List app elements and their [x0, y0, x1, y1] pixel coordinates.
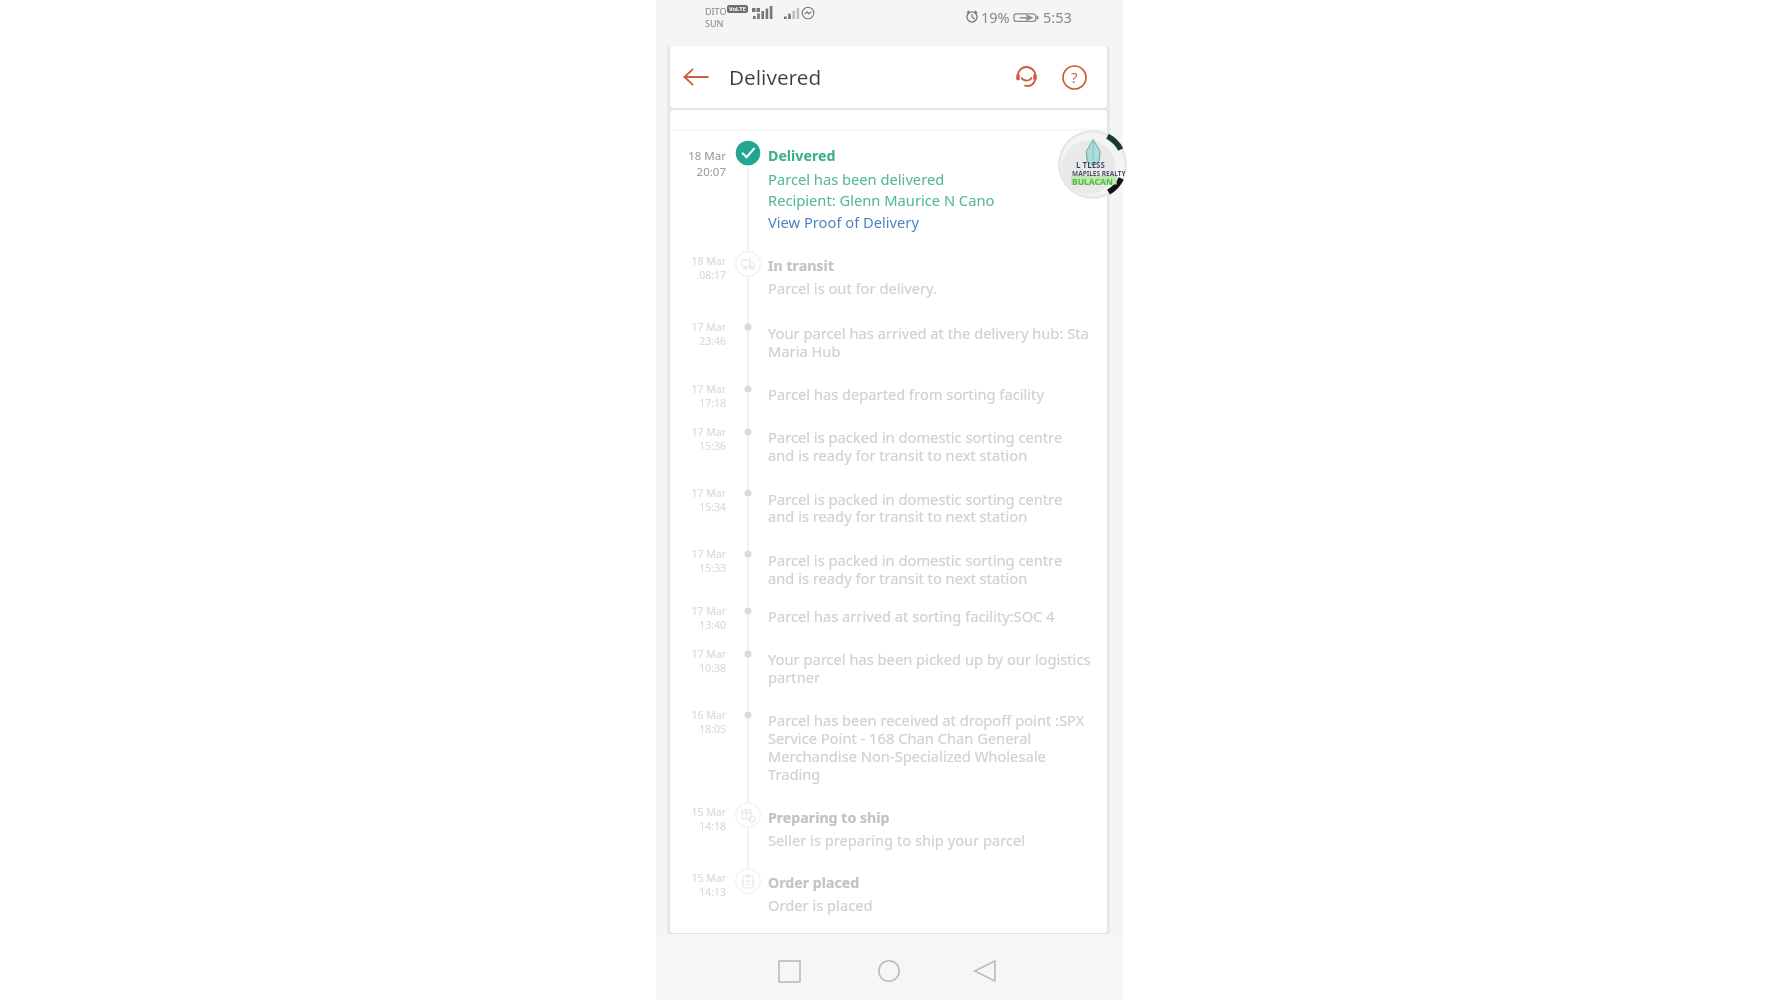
staticText: and is ready for transit to next station — [768, 568, 1028, 588]
staticText: ? — [1071, 67, 1078, 87]
staticText: Service Point - 168 Chan Chan General — [768, 728, 1032, 748]
staticText: Your parcel has been picked up by our lo… — [768, 649, 1091, 669]
staticText: 18 Mar — [691, 254, 726, 268]
staticText: Seller is preparing to ship your parcel — [768, 830, 1026, 850]
staticText: 17 Mar — [691, 547, 726, 561]
staticText: 14:13 — [699, 885, 726, 899]
staticText: Maria Hub — [768, 341, 841, 361]
button[interactable]: Back — [959, 945, 1011, 997]
staticText: Preparing to ship — [768, 808, 890, 827]
button[interactable]: Customer service — [1003, 54, 1049, 100]
staticText: Your parcel has arrived at the delivery … — [768, 323, 1089, 343]
staticText: Parcel is packed in domestic sorting cen… — [768, 550, 1063, 570]
staticText: 14:18 — [699, 819, 726, 833]
staticText: Order is placed — [768, 895, 873, 915]
staticText: 18 Mar — [688, 148, 726, 164]
staticText: 23:46 — [699, 334, 726, 348]
staticText: 17 Mar — [691, 486, 726, 500]
button[interactable]: Recents — [763, 945, 815, 997]
button[interactable]: Home — [863, 945, 915, 997]
staticText: Delivered — [729, 63, 822, 91]
staticText: partner — [768, 667, 821, 687]
staticText: Trading — [768, 764, 821, 784]
staticText: Parcel is packed in domestic sorting cen… — [768, 427, 1063, 447]
staticText: 17 Mar — [691, 320, 726, 334]
staticText: In transit — [768, 256, 834, 275]
staticText: 5:53 — [1043, 7, 1072, 27]
staticText: and is ready for transit to next station — [768, 506, 1028, 526]
staticText: 15:36 — [699, 439, 726, 453]
staticText: 15:34 — [699, 500, 726, 514]
staticText: Parcel is packed in domestic sorting cen… — [768, 489, 1063, 509]
staticText: Merchandise Non-Specialized Wholesale — [768, 746, 1046, 766]
staticText: Parcel has been received at dropoff poin… — [768, 710, 1085, 730]
button[interactable]: Back — [670, 51, 722, 103]
button[interactable]: View Proof of Delivery — [768, 212, 919, 232]
staticText: VoLTE — [729, 5, 746, 13]
staticText: Order placed — [768, 873, 860, 892]
staticText: Parcel has arrived at sorting facility:S… — [768, 606, 1055, 626]
staticText: 17 Mar — [691, 425, 726, 439]
staticText: Parcel has been delivered — [768, 169, 945, 189]
staticText: 13:40 — [699, 618, 726, 632]
staticText: 17 Mar — [691, 604, 726, 618]
staticText: 08:17 — [699, 268, 726, 282]
staticText: 17 Mar — [691, 647, 726, 661]
staticText: 10:38 — [699, 661, 726, 675]
staticText: 19% — [981, 7, 1010, 27]
staticText: 20:07 — [696, 164, 726, 180]
staticText: 17 Mar — [691, 382, 726, 396]
staticText: 16 Mar — [691, 708, 726, 722]
staticText: Recipient: Glenn Maurice N Cano — [768, 190, 995, 210]
staticText: 17:18 — [699, 396, 726, 410]
staticText: Parcel has departed from sorting facilit… — [768, 384, 1044, 404]
staticText: Delivered — [768, 146, 836, 165]
staticText: L TLESS — [1076, 159, 1105, 170]
staticText: 15 Mar — [691, 805, 726, 819]
staticText: SUN — [705, 17, 724, 29]
staticText: DITO — [705, 5, 727, 17]
staticText: BULACAN — [1072, 176, 1113, 188]
staticText: 15:33 — [699, 561, 726, 575]
button[interactable]: Help — [1051, 54, 1097, 100]
staticText: MAPILES REALTY — [1072, 169, 1126, 178]
staticText: and is ready for transit to next station — [768, 445, 1028, 465]
staticText: 15 Mar — [691, 871, 726, 885]
staticText: 18:05 — [699, 722, 726, 736]
staticText: Parcel is out for delivery. — [768, 278, 937, 298]
